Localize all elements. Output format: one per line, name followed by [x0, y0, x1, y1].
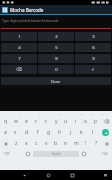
- staticText: 7: [18, 56, 21, 62]
- button[interactable]: 2: [38, 32, 74, 41]
- staticText: k: [80, 129, 83, 136]
- button[interactable]: 8: [38, 54, 74, 63]
- button[interactable]: 9: [75, 54, 111, 63]
- button[interactable]: k: [76, 127, 87, 138]
- staticText: 5: [50, 113, 52, 116]
- staticText: 0: [55, 67, 58, 73]
- staticText: 6: [60, 113, 62, 116]
- staticText: 4: [18, 45, 21, 51]
- staticText: 9: [91, 113, 93, 116]
- button[interactable]: Enter: [98, 127, 112, 138]
- button[interactable]: r: [31, 116, 41, 127]
- staticText: ?123: [4, 152, 10, 156]
- staticText: p: [94, 118, 98, 125]
- button[interactable]: l: [87, 127, 98, 138]
- button[interactable]: z: [11, 138, 21, 149]
- staticText: 0: [102, 113, 104, 116]
- button[interactable]: p: [91, 116, 101, 127]
- staticText: t: [45, 118, 47, 125]
- button[interactable]: Recent apps: [65, 170, 79, 180]
- button[interactable]: t: [41, 116, 51, 127]
- button[interactable]: h: [54, 127, 65, 138]
- button[interactable]: e: [21, 116, 31, 127]
- button[interactable]: ,: [14, 149, 23, 159]
- staticText: English: [52, 152, 61, 156]
- button[interactable]: u: [61, 116, 71, 127]
- button[interactable]: w: [11, 116, 21, 127]
- button[interactable]: y: [51, 116, 61, 127]
- staticText: m: [74, 140, 79, 147]
- staticText: ⌫: [16, 67, 22, 72]
- button[interactable]: d: [21, 127, 32, 138]
- staticText: v: [45, 140, 48, 147]
- staticText: 8: [81, 113, 83, 116]
- staticText: b: [54, 140, 58, 147]
- staticText: 5: [55, 45, 58, 51]
- button[interactable]: q: [0, 116, 11, 127]
- button[interactable]: Backspace: [101, 116, 112, 127]
- staticText: 7: [71, 113, 73, 116]
- button[interactable]: Back: [18, 170, 31, 180]
- staticText: l: [92, 129, 94, 136]
- staticText: Done: [51, 79, 61, 84]
- staticText: 9: [92, 56, 95, 62]
- button[interactable]: Settings: [79, 149, 89, 159]
- button[interactable]: English: [33, 151, 79, 157]
- staticText: 2: [55, 34, 58, 40]
- staticText: x: [25, 140, 28, 147]
- staticText: w: [14, 118, 18, 125]
- button[interactable]: Home: [41, 170, 55, 180]
- button[interactable]: !: [81, 138, 91, 149]
- staticText: 3: [92, 34, 95, 40]
- button[interactable]: ✓: [75, 65, 111, 74]
- other: App icon: [2, 7, 8, 13]
- button[interactable]: Shift: [0, 138, 11, 149]
- button[interactable]: ?123: [98, 149, 112, 159]
- staticText: d: [25, 129, 29, 136]
- staticText: Type digits printed below the barcode: [2, 19, 59, 23]
- button[interactable]: a: [0, 127, 10, 138]
- button[interactable]: App icon: [0, 5, 112, 14]
- staticText: f: [37, 129, 39, 136]
- staticText: g: [47, 129, 51, 136]
- button[interactable]: o: [81, 116, 91, 127]
- button[interactable]: n: [61, 138, 71, 149]
- button[interactable]: 5: [38, 43, 74, 52]
- button[interactable]: Done: [1, 77, 111, 85]
- button[interactable]: ?123: [0, 149, 14, 159]
- button[interactable]: Keyboard indicator: [98, 170, 112, 180]
- staticText: 2: [19, 113, 21, 116]
- staticText: h: [58, 129, 62, 136]
- staticText: 1: [18, 34, 21, 40]
- button[interactable]: m: [71, 138, 81, 149]
- staticText: a: [4, 129, 7, 136]
- staticText: ✓: [91, 67, 95, 72]
- button[interactable]: s: [10, 127, 21, 138]
- button[interactable]: 7: [1, 54, 37, 63]
- button[interactable]: b: [51, 138, 61, 149]
- button[interactable]: c: [31, 138, 41, 149]
- button[interactable]: ⌫: [1, 65, 37, 74]
- button[interactable]: ?: [91, 138, 101, 149]
- button[interactable]: 4: [1, 43, 37, 52]
- staticText: ,: [18, 152, 20, 157]
- button[interactable]: x: [21, 138, 31, 149]
- button[interactable]: Emoji: [23, 149, 33, 159]
- button[interactable]: Shift: [101, 138, 112, 149]
- button[interactable]: 6: [75, 43, 111, 52]
- button[interactable]: v: [41, 138, 51, 149]
- staticText: i: [75, 118, 77, 125]
- staticText: j: [70, 129, 72, 136]
- button[interactable]: 0: [38, 65, 74, 74]
- staticText: Mocha Barcode: [10, 7, 44, 13]
- staticText: .: [93, 152, 95, 157]
- button[interactable]: 1: [1, 32, 37, 41]
- button[interactable]: g: [43, 127, 54, 138]
- staticText: 3: [29, 113, 31, 116]
- button[interactable]: i: [71, 116, 81, 127]
- button[interactable]: j: [65, 127, 76, 138]
- button[interactable]: 3: [75, 32, 111, 41]
- button[interactable]: f: [32, 127, 43, 138]
